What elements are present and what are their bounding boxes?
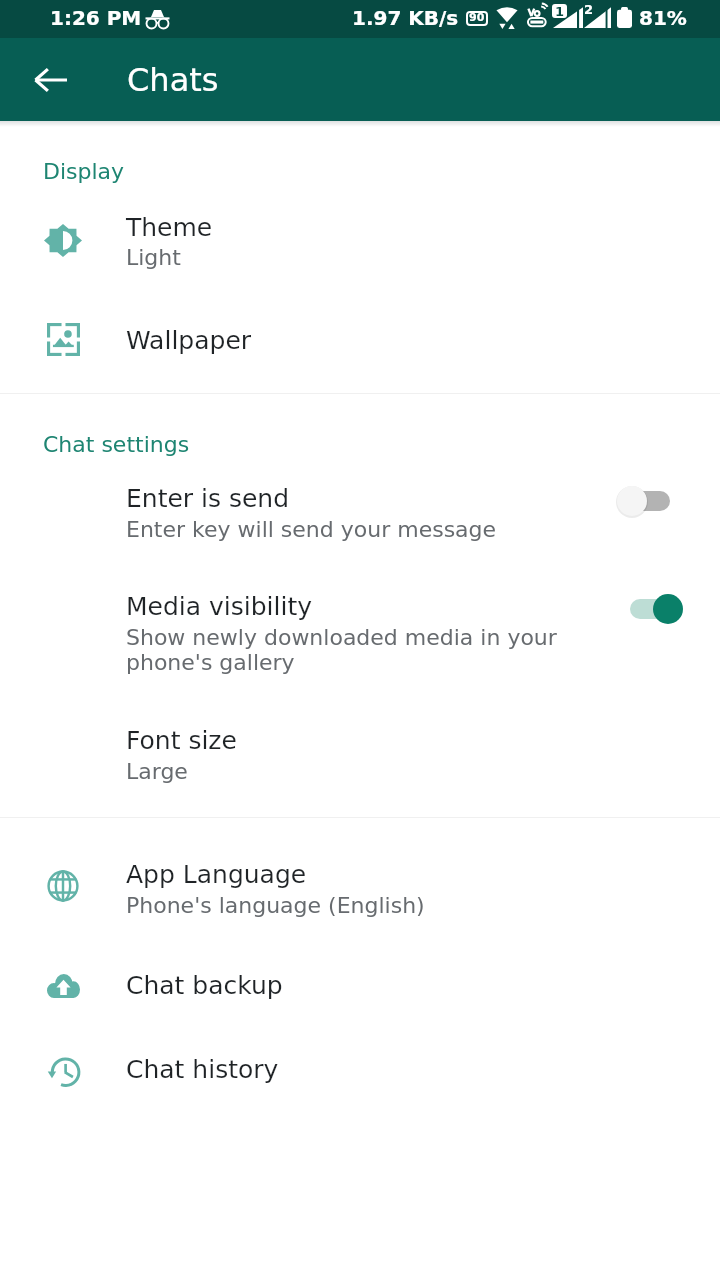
button[interactable]	[0, 848, 720, 930]
button[interactable]	[0, 950, 720, 1028]
staticText: Font size	[126, 726, 237, 755]
button[interactable]	[0, 578, 720, 683]
button[interactable]	[0, 1033, 720, 1111]
staticText: Light	[126, 245, 181, 271]
staticText: 1	[555, 4, 565, 18]
button[interactable]: Toggle off	[620, 471, 700, 531]
button[interactable]: Toggle on	[620, 579, 700, 639]
staticText: 81%	[639, 6, 687, 29]
button[interactable]	[0, 200, 720, 282]
staticText: Show newly downloaded media in your	[126, 625, 557, 651]
staticText: App Language	[126, 860, 307, 889]
button[interactable]	[0, 300, 720, 378]
staticText: Phone's language (English)	[126, 893, 425, 919]
staticText: Chats	[127, 61, 219, 98]
staticText: 1:26 PM	[50, 6, 142, 29]
staticText: Display	[43, 159, 125, 185]
staticText: Large	[126, 759, 188, 785]
staticText: 90	[469, 11, 485, 24]
staticText: Wallpaper	[126, 326, 252, 355]
staticText: Enter key will send your message	[126, 517, 497, 543]
staticText: phone's gallery	[126, 650, 295, 676]
staticText: Enter is send	[126, 484, 290, 513]
staticText: 2	[584, 2, 594, 17]
staticText: Chat backup	[126, 971, 283, 1000]
staticText: Chat history	[126, 1055, 279, 1084]
button[interactable]	[0, 470, 720, 550]
staticText: 1.97 KB/s	[352, 6, 459, 29]
button[interactable]	[0, 712, 720, 792]
staticText: Media visibility	[126, 592, 313, 621]
staticText: Theme	[126, 213, 213, 242]
staticText: Chat settings	[43, 432, 190, 458]
button[interactable]: Back	[22, 52, 78, 108]
